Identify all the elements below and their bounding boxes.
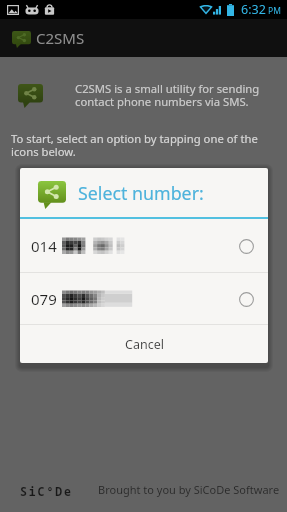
staticText: Select number:	[78, 181, 204, 205]
staticText: To start, select an option by tapping on…	[11, 131, 261, 159]
staticText: 6:32	[241, 1, 266, 18]
staticText: PM	[268, 5, 281, 17]
button[interactable]: Select 079	[236, 289, 256, 309]
button[interactable]: C2SMS	[12, 19, 287, 57]
staticText: 014	[31, 236, 57, 256]
button[interactable]: Select 014	[236, 236, 256, 256]
staticText: SiC°De	[20, 484, 73, 500]
staticText: C2SMS	[36, 28, 85, 48]
staticText: C2SMS is a small utility for sending con…	[75, 81, 267, 109]
staticText: 079	[31, 289, 57, 309]
button[interactable]: 014	[20, 219, 268, 272]
button[interactable]: 079	[20, 273, 268, 324]
button[interactable]: Cancel	[20, 325, 268, 363]
staticText: Cancel	[125, 336, 164, 353]
staticText: Brought to you by SiCoDe Software	[98, 482, 280, 497]
